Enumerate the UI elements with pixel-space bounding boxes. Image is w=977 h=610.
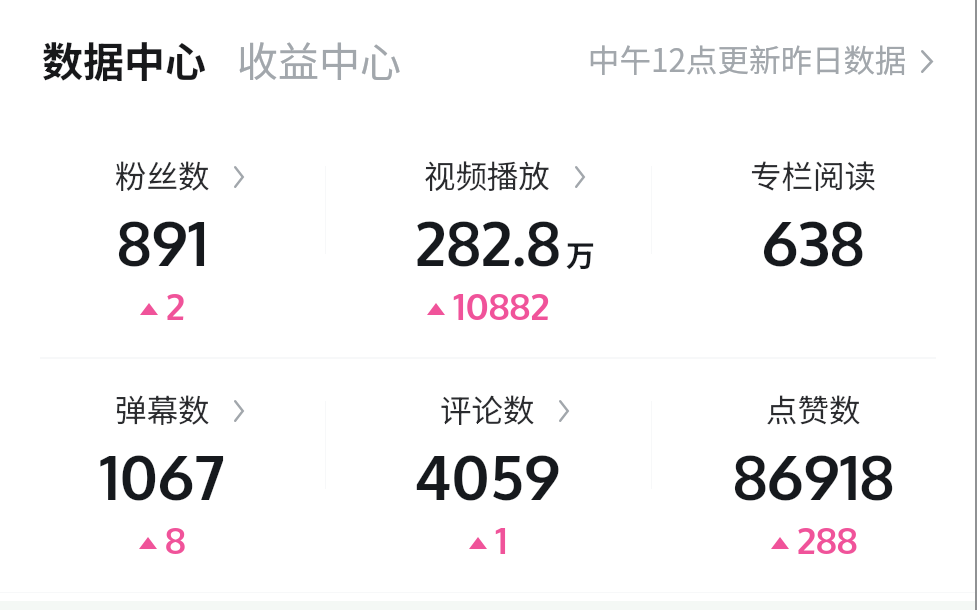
button[interactable]: 点赞数	[651, 344, 977, 580]
staticText: 万	[566, 232, 596, 274]
other: More details	[559, 400, 569, 422]
staticText: 288	[797, 516, 858, 563]
staticText: 1	[495, 516, 508, 563]
other: Increase	[771, 537, 789, 549]
button[interactable]: 中午12点更新昨日数据	[588, 35, 933, 81]
staticText: 1067	[99, 437, 225, 514]
staticText: 专栏阅读	[750, 151, 877, 197]
staticText: 638	[762, 203, 865, 280]
staticText: 收益中心	[237, 29, 401, 88]
other: Increase	[140, 303, 158, 315]
button[interactable]: 粉丝数	[0, 110, 325, 346]
other: More details	[921, 50, 933, 73]
staticText: 8	[165, 516, 186, 563]
other: More details	[234, 166, 244, 188]
staticText: 86918	[733, 437, 895, 514]
staticText: 评论数	[440, 385, 535, 431]
button[interactable]: 评论数	[325, 344, 651, 580]
button[interactable]: 数据中心	[42, 29, 206, 88]
button[interactable]: 视频播放	[325, 110, 651, 346]
other: Increase	[427, 303, 445, 315]
staticText: 视频播放	[424, 151, 551, 197]
other: Increase	[139, 537, 157, 549]
staticText: 中午12点更新昨日数据	[588, 35, 907, 81]
staticText: 10882	[453, 282, 550, 329]
staticText: 891	[117, 203, 208, 280]
staticText: 4059	[414, 437, 561, 514]
other: More details	[575, 166, 585, 188]
staticText: 点赞数	[766, 385, 861, 431]
other: Increase	[469, 537, 487, 549]
button[interactable]: 弹幕数	[0, 344, 325, 580]
staticText: 282.8	[415, 203, 561, 280]
staticText: 粉丝数	[115, 151, 210, 197]
staticText: 2	[166, 282, 186, 329]
button[interactable]: 专栏阅读	[651, 110, 977, 346]
staticText: 数据中心	[42, 29, 206, 88]
other: More details	[234, 400, 244, 422]
staticText: 弹幕数	[115, 385, 210, 431]
button[interactable]: 收益中心	[237, 29, 401, 88]
